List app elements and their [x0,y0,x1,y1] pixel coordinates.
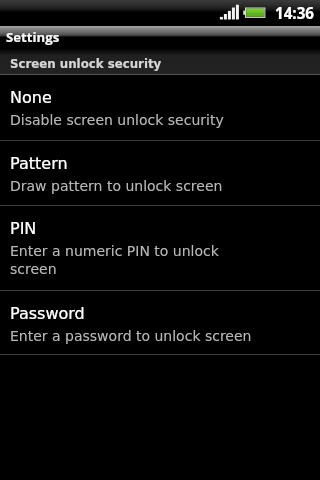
button[interactable]: Pattern [0,141,320,205]
button[interactable]: Password [0,291,320,354]
button[interactable]: Settings [0,26,320,49]
staticText: 14:36 [275,3,315,24]
staticText: Password [10,304,85,323]
staticText: Enter a numeric PIN to unlock screen [10,242,219,278]
staticText: Draw pattern to unlock screen [10,177,223,195]
staticText: PIN [10,219,37,238]
staticText: Enter a password to unlock screen [10,327,252,345]
staticText: Pattern [10,154,68,173]
staticText: Settings [6,28,60,46]
staticText: Disable screen unlock security [10,111,224,129]
staticText: None [10,88,52,107]
button[interactable]: None [0,75,320,140]
staticText: Screen unlock security [10,57,162,71]
button[interactable]: PIN [0,206,320,290]
